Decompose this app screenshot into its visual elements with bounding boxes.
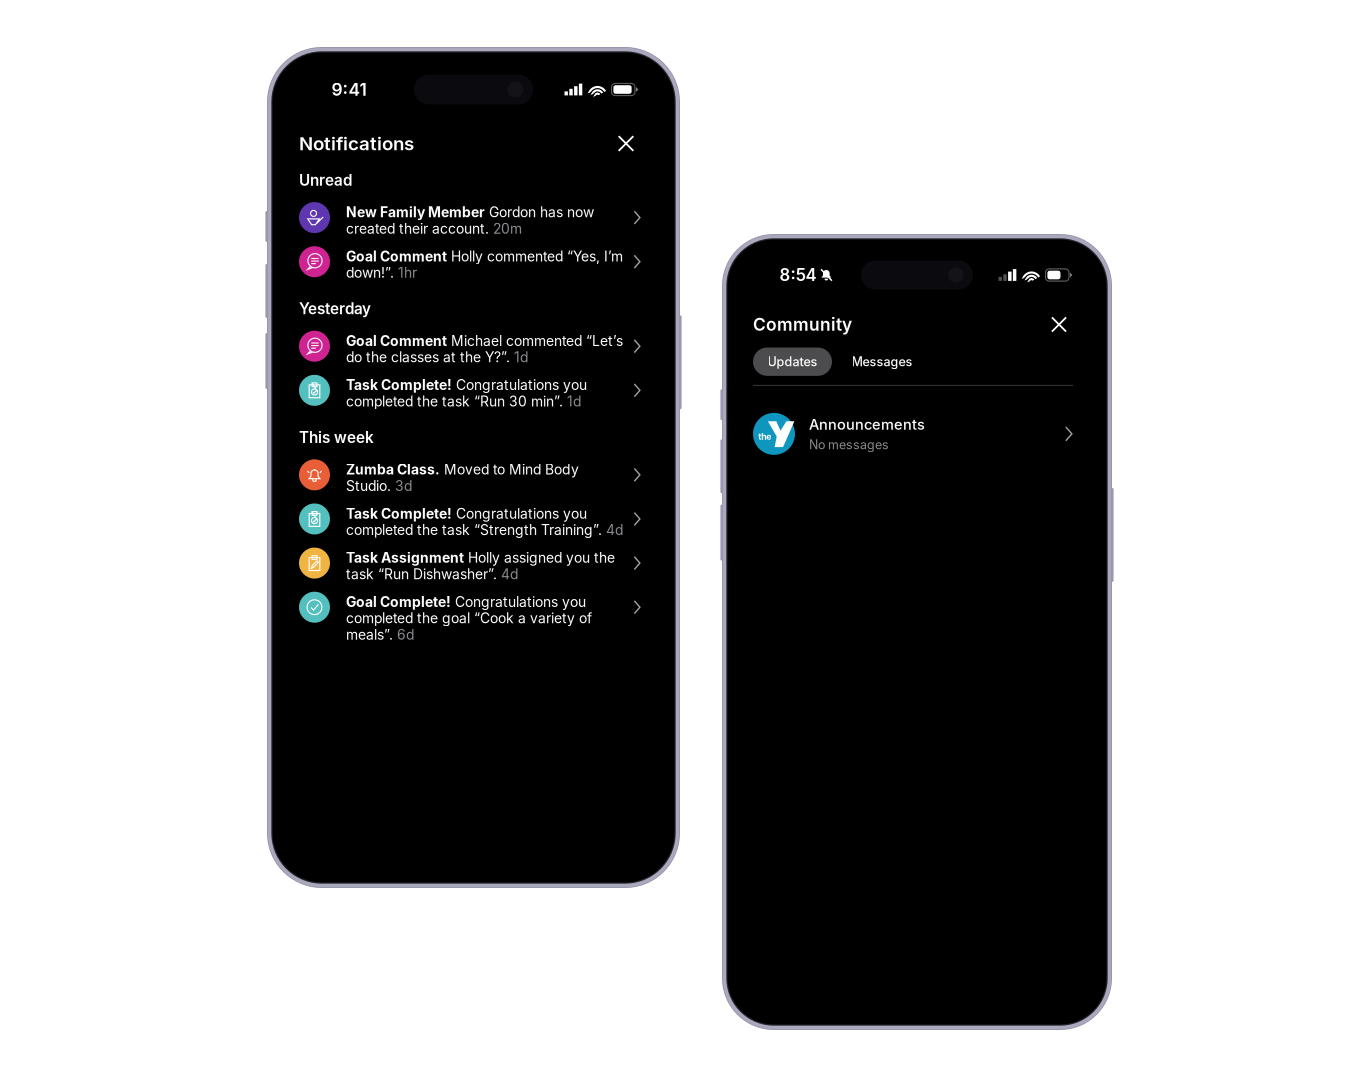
staticText: Updates [767,354,817,369]
staticText: Unread [299,171,352,189]
staticText: Goal Comment Holly commented “Yes, I’m d… [346,248,623,281]
staticText: the [758,431,771,442]
button[interactable]: Updates [753,347,832,376]
staticText: No messages [809,437,889,452]
button[interactable]: Task Assignment Holly assigned you the t… [299,543,641,587]
staticText: 9:41 [331,79,366,100]
button[interactable]: Zumba Class. Moved to Mind Body Studio. … [299,455,641,499]
button[interactable]: Task Complete! Congratulations you compl… [299,370,641,414]
staticText: Yesterday [299,300,371,318]
staticText: Announcements [809,416,925,433]
staticText: Task Assignment Holly assigned you the t… [346,550,615,582]
button[interactable]: Goal Complete! Congratulations you compl… [299,587,641,647]
button[interactable]: New Family Member Gordon has now created… [299,197,641,241]
staticText: Notifications [299,132,414,155]
button[interactable]: Close [1045,310,1073,338]
button[interactable]: Close [611,128,641,158]
button[interactable]: Task Complete! Congratulations you compl… [299,499,641,543]
staticText: This week [299,428,374,447]
button[interactable]: Messages [837,347,927,376]
staticText: Messages [851,354,912,369]
staticText: Zumba Class. Moved to Mind Body Studio. … [346,461,579,494]
button[interactable]: Goal Comment Michael commented “Let’s do… [299,326,641,370]
staticText: Community [753,314,852,335]
staticText: Goal Complete! Congratulations you compl… [346,594,592,643]
staticText: New Family Member Gordon has now created… [346,204,594,237]
staticText: Task Complete! Congratulations you compl… [346,505,623,538]
staticText: 8:54 [779,265,816,285]
staticText: Task Complete! Congratulations you compl… [346,377,587,409]
button[interactable]: Goal Comment Holly commented “Yes, I’m d… [299,241,641,286]
button[interactable]: the [753,404,1073,464]
staticText: Goal Comment Michael commented “Let’s do… [346,333,623,365]
